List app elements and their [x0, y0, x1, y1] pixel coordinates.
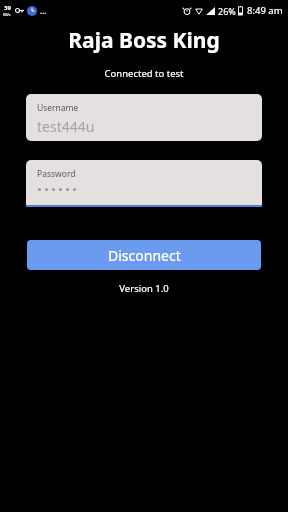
staticText: Connected to test [0, 67, 288, 80]
staticText: 39 [4, 4, 11, 12]
button[interactable]: Username [26, 94, 262, 141]
staticText: Version 1.0 [0, 282, 288, 295]
staticText: Raja Boss King [0, 26, 288, 55]
staticText: test444u [37, 117, 95, 136]
staticText: Username [37, 102, 79, 114]
staticText: 26% [218, 5, 236, 17]
staticText: ... [40, 5, 47, 16]
staticText: KB/s [3, 12, 11, 17]
staticText: 8:49 am [247, 4, 283, 17]
button[interactable]: Password [26, 160, 262, 207]
button[interactable]: Disconnect [27, 240, 261, 270]
staticText: Password [37, 168, 76, 180]
staticText: Disconnect [108, 246, 181, 265]
